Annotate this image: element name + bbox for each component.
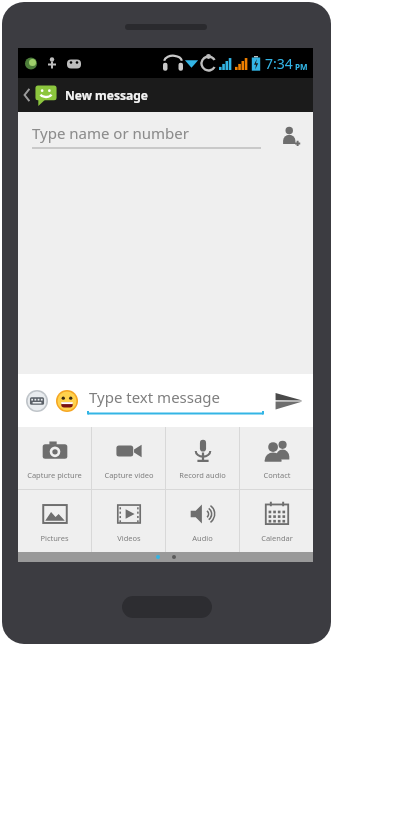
button[interactable]: Capture picture	[18, 427, 91, 489]
staticText: New message	[65, 87, 148, 103]
button[interactable]: Calendar	[240, 490, 313, 552]
staticText: Calendar	[261, 533, 293, 543]
button[interactable]: Insert emoji	[54, 388, 80, 414]
staticText: Audio	[192, 533, 213, 543]
button[interactable]: Add recipient from contacts	[269, 114, 313, 158]
staticText: Capture picture	[27, 470, 82, 480]
staticText: Type name or number	[32, 123, 189, 143]
button[interactable]: Audio	[166, 490, 239, 552]
button[interactable]: Videos	[92, 490, 165, 552]
staticText: Capture video	[104, 470, 154, 480]
button[interactable]: Type text message	[88, 387, 263, 415]
staticText: Videos	[117, 533, 141, 543]
button[interactable]: Pictures	[18, 490, 91, 552]
staticText: Record audio	[179, 470, 226, 480]
staticText: Pictures	[40, 533, 69, 543]
button[interactable]: Navigate up	[18, 79, 150, 111]
button[interactable]: Keyboard	[24, 388, 50, 414]
button[interactable]: Home	[122, 596, 212, 618]
button[interactable]: Type name or number	[32, 123, 261, 149]
staticText: 7:34	[265, 54, 293, 73]
staticText: Type text message	[89, 387, 221, 407]
button[interactable]: Contact	[240, 427, 313, 489]
staticText: PM	[295, 61, 308, 72]
button[interactable]: Record audio	[166, 427, 239, 489]
button[interactable]: Capture video	[92, 427, 165, 489]
button[interactable]: Send message	[269, 381, 309, 421]
staticText: Contact	[263, 470, 291, 480]
